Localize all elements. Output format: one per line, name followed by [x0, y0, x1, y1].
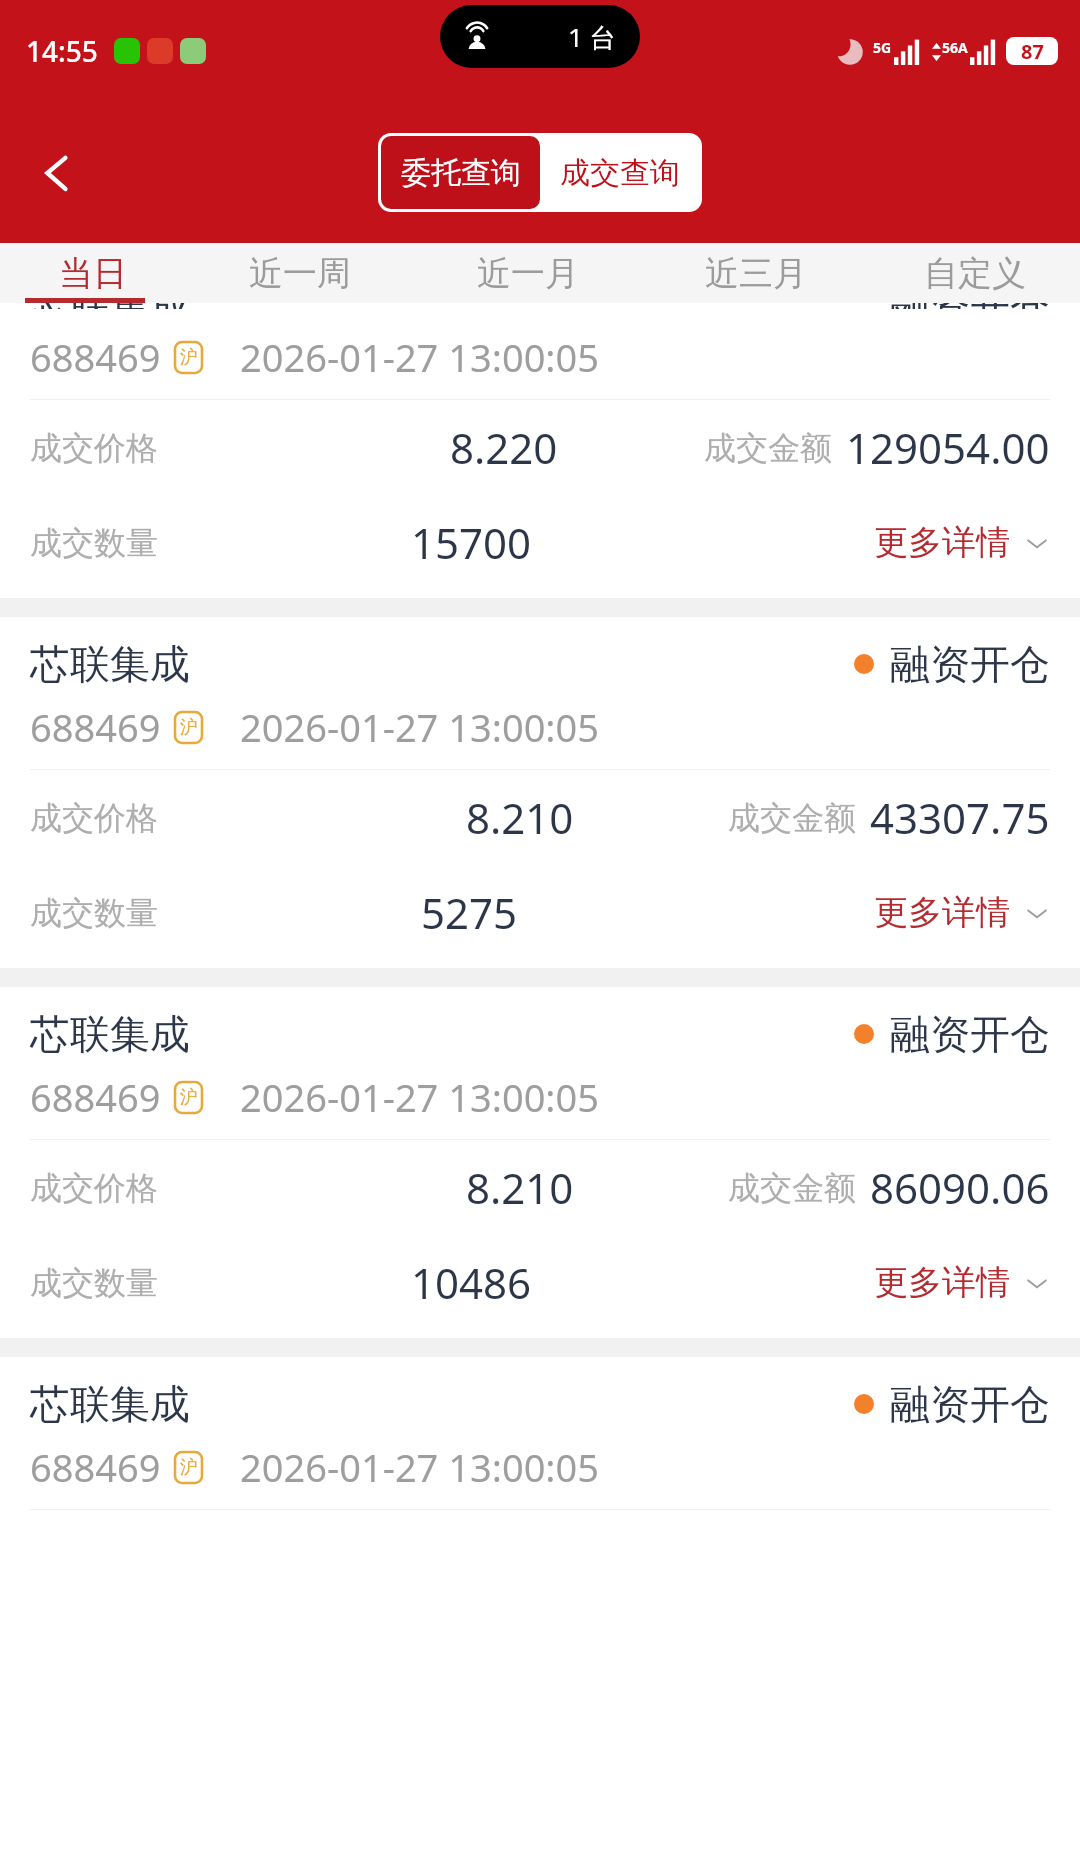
staticText: 14:55	[26, 32, 98, 70]
button[interactable]: 近一周	[186, 243, 414, 303]
staticText: 5275	[421, 884, 518, 941]
button[interactable]: 芯联集成	[0, 987, 1080, 1338]
staticText: 芯联集成	[30, 1009, 190, 1059]
staticText: 688469	[30, 1441, 161, 1493]
staticText: 2026-01-27 13:00:05	[240, 701, 600, 753]
staticText: 129054.00	[846, 419, 1050, 476]
staticText: 沪	[180, 1456, 198, 1479]
staticText: 沪	[180, 346, 198, 369]
button[interactable]: Back	[20, 136, 94, 210]
button[interactable]: 近三月	[642, 243, 870, 303]
staticText: 芯联集成	[30, 303, 190, 309]
staticText: 10486	[411, 1254, 532, 1311]
staticText: 688469	[30, 701, 161, 753]
button[interactable]: 当日	[0, 243, 186, 303]
staticText: 融资开仓	[890, 639, 1050, 689]
staticText: 8.210	[466, 1159, 574, 1216]
staticText: 成交数量	[30, 893, 158, 933]
staticText: 成交金额	[728, 798, 856, 838]
button[interactable]: 更多详情	[874, 521, 1050, 564]
staticText: 1 台	[568, 19, 616, 55]
button[interactable]: 成交查询	[540, 136, 699, 209]
staticText: 15700	[411, 514, 532, 571]
staticText: 87	[1021, 38, 1044, 65]
staticText: 近一周	[249, 252, 351, 295]
staticText: 成交金额	[728, 1168, 856, 1208]
staticText: 成交数量	[30, 523, 158, 563]
staticText: 8.220	[450, 419, 558, 476]
staticText: 2026-01-27 13:00:05	[240, 1441, 600, 1493]
staticText: 融资开仓	[890, 1379, 1050, 1429]
button[interactable]: 更多详情	[874, 891, 1050, 934]
staticText: 更多详情	[874, 521, 1010, 564]
staticText: 芯联集成	[30, 639, 190, 689]
staticText: 2026-01-27 13:00:05	[240, 331, 600, 383]
staticText: 沪	[180, 716, 198, 739]
staticText: 自定义	[924, 252, 1026, 295]
button[interactable]: 芯联集成	[0, 617, 1080, 968]
staticText: 更多详情	[874, 891, 1010, 934]
staticText: 委托查询	[401, 154, 521, 192]
staticText: 当日	[59, 252, 127, 295]
staticText: 成交价格	[30, 428, 158, 468]
button[interactable]: 近一月	[414, 243, 642, 303]
button[interactable]: 自定义	[870, 243, 1080, 303]
button[interactable]: 委托查询	[381, 136, 540, 209]
staticText: 芯联集成	[30, 1379, 190, 1429]
staticText: 成交金额	[704, 428, 832, 468]
staticText: 688469	[30, 331, 161, 383]
staticText: 近一月	[477, 252, 579, 295]
staticText: 融资开仓	[890, 303, 1050, 309]
staticText: 43307.75	[870, 789, 1050, 846]
staticText: 688469	[30, 1071, 161, 1123]
staticText: 成交数量	[30, 1263, 158, 1303]
staticText: 成交价格	[30, 798, 158, 838]
staticText: 56A	[942, 38, 968, 57]
staticText: 86090.06	[870, 1159, 1050, 1216]
staticText: 5G	[873, 38, 892, 57]
staticText: 沪	[180, 1086, 198, 1109]
staticText: 成交价格	[30, 1168, 158, 1208]
staticText: 2026-01-27 13:00:05	[240, 1071, 600, 1123]
button[interactable]: 更多详情	[874, 1261, 1050, 1304]
staticText: 近三月	[705, 252, 807, 295]
button[interactable]: 芯联集成	[0, 1357, 1080, 1510]
staticText: 成交查询	[560, 154, 680, 192]
staticText: 更多详情	[874, 1261, 1010, 1304]
staticText: 融资开仓	[890, 1009, 1050, 1059]
staticText: 8.210	[466, 789, 574, 846]
button[interactable]: 芯联集成	[0, 303, 1080, 598]
